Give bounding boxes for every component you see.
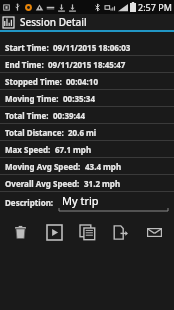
staticText: 67.1 mph <box>55 144 92 155</box>
staticText: 09/11/2015 18:06:03 <box>53 42 131 53</box>
staticText: Start Time: <box>5 42 49 53</box>
button[interactable]: Delete <box>7 219 33 245</box>
staticText: Total Time: <box>5 110 49 121</box>
staticText: End Time: <box>5 59 44 70</box>
button[interactable]: My trip <box>59 192 168 212</box>
button[interactable]: Email <box>141 219 167 245</box>
staticText: Session Detail <box>20 15 87 29</box>
staticText: 00:04:10 <box>66 76 98 87</box>
staticText: My trip <box>62 193 99 208</box>
staticText: 00:35:34 <box>63 93 95 104</box>
button[interactable]: Export <box>107 219 133 245</box>
staticText: 31.2 mph <box>84 178 121 189</box>
button[interactable]: Copy <box>74 219 100 245</box>
button[interactable]: Play <box>41 219 67 245</box>
staticText: Overall Avg Speed: <box>5 178 80 189</box>
staticText: 20.6 mi <box>68 127 97 138</box>
staticText: 00:39:44 <box>53 110 85 121</box>
staticText: Moving Time: <box>5 93 59 104</box>
staticText: Description: <box>5 197 54 208</box>
button[interactable]: Session Detail <box>0 14 174 30</box>
staticText: Max Speed: <box>5 144 51 155</box>
staticText: Moving Avg Speed: <box>5 161 81 172</box>
staticText: 2:57 PM <box>138 1 172 13</box>
staticText: Total Distance: <box>5 127 64 138</box>
staticText: 09/11/2015 18:45:47 <box>48 59 126 70</box>
staticText: 43.4 mph <box>85 161 122 172</box>
staticText: Stopped Time: <box>5 76 62 87</box>
